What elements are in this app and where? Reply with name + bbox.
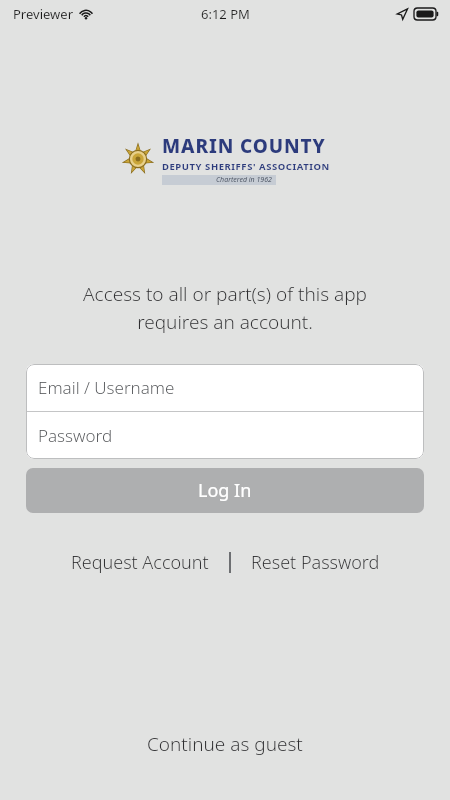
other: Battery: [414, 8, 439, 20]
staticText: Reset Password: [251, 550, 380, 575]
other: Wi-Fi: [79, 7, 93, 21]
staticText: Password: [38, 424, 113, 447]
staticText: Email / Username: [38, 376, 175, 399]
staticText: Log In: [198, 478, 252, 503]
staticText: Chartered in 1962: [216, 175, 272, 185]
staticText: Previewer: [13, 5, 73, 23]
staticText: DEPUTY SHERIFFS' ASSOCIATION: [162, 160, 330, 173]
staticText: Continue as guest: [147, 731, 303, 757]
button[interactable]: Email / Username: [26, 364, 424, 411]
button[interactable]: Reset Password: [245, 546, 386, 579]
other: Location: [396, 8, 408, 20]
staticText: 6:12 PM: [201, 5, 250, 23]
staticText: MARIN COUNTY: [162, 133, 326, 159]
button[interactable]: Password: [26, 412, 424, 459]
staticText: Request Account: [71, 550, 209, 575]
button[interactable]: Log In: [26, 468, 424, 513]
staticText: Access to all or part(s) of this app req…: [0, 281, 450, 335]
button[interactable]: Continue as guest: [0, 721, 450, 767]
button[interactable]: Request Account: [65, 546, 215, 579]
